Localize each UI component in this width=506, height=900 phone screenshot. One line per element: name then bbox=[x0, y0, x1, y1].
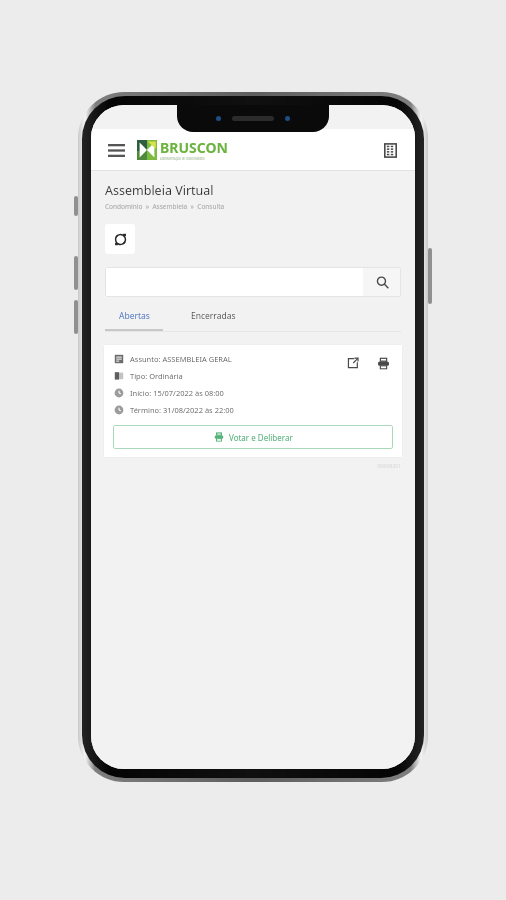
staticText: Término: 31/08/2022 às 22:00 bbox=[130, 405, 234, 415]
staticText: Condomínio » Assembleia » Consulta bbox=[105, 202, 225, 211]
staticText: ADMINISTRAÇÃO DE CONDOMÍNIOS bbox=[160, 157, 205, 161]
button[interactable]: Condomínio bbox=[377, 137, 403, 163]
staticText: Votar e Deliberar bbox=[229, 432, 293, 443]
button[interactable]: Abertas bbox=[113, 308, 156, 324]
button[interactable]: Encerradas bbox=[185, 308, 242, 324]
staticText: Início: 15/07/2022 às 08:00 bbox=[130, 388, 224, 398]
staticText: Encerradas bbox=[191, 310, 236, 322]
button[interactable]: Abrir bbox=[343, 353, 363, 373]
staticText: Abertas bbox=[119, 310, 150, 322]
button[interactable]: Votar e Deliberar bbox=[113, 425, 393, 449]
button[interactable] bbox=[105, 267, 363, 297]
staticText: BRUSCON bbox=[160, 138, 228, 157]
button[interactable]: Atualizar bbox=[105, 224, 135, 254]
staticText: Tipo: Ordinária bbox=[130, 371, 183, 381]
button[interactable]: Menu bbox=[103, 137, 129, 163]
button[interactable]: Imprimir bbox=[373, 353, 393, 373]
button[interactable]: Pesquisar bbox=[363, 267, 401, 297]
staticText: Assunto: ASSEMBLEIA GERAL bbox=[130, 354, 232, 364]
staticText: Assembleia Virtual bbox=[105, 182, 214, 199]
